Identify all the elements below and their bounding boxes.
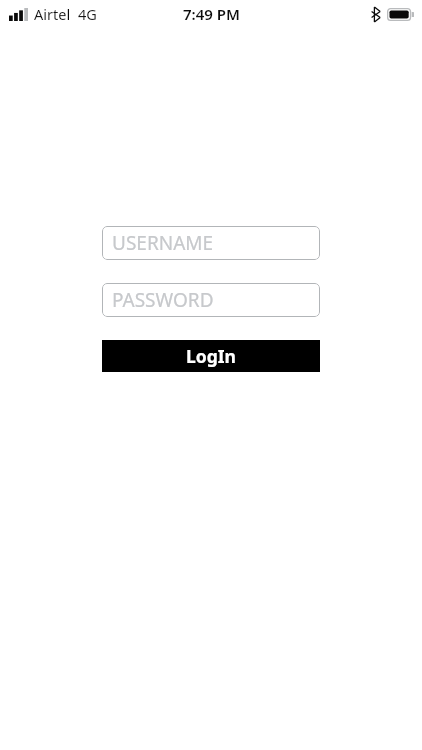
button[interactable]: Log in <box>102 340 320 372</box>
button[interactable]: USERNAME <box>102 226 320 260</box>
staticText: 4G <box>78 4 97 24</box>
staticText: 7:49 PM <box>183 4 240 24</box>
staticText: PASSWORD <box>112 287 214 313</box>
staticText: LogIn <box>186 344 236 368</box>
button[interactable]: PASSWORD <box>102 283 320 317</box>
staticText: USERNAME <box>112 230 214 256</box>
staticText: Airtel <box>34 4 71 24</box>
